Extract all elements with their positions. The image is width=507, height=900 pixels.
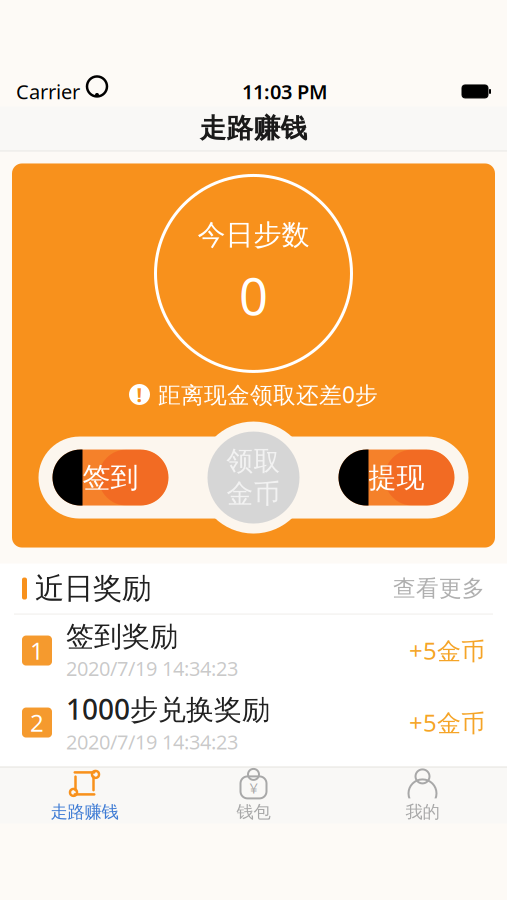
staticText: 领取 xyxy=(226,445,280,478)
staticText: 签到奖励 xyxy=(66,620,178,654)
staticText: 签到 xyxy=(82,460,138,495)
staticText: +5金币 xyxy=(409,635,485,666)
staticText: 2020/7/19 14:34:23 xyxy=(66,728,238,755)
staticText: 11:03 PM xyxy=(242,78,328,105)
button[interactable]: 领取 xyxy=(207,432,299,524)
staticText: 走路赚钱 xyxy=(199,112,307,145)
button[interactable]: ¥ xyxy=(169,768,338,824)
button[interactable]: 我的 xyxy=(338,768,507,824)
button[interactable]: 签到 xyxy=(52,450,168,506)
staticText: 钱包 xyxy=(236,801,270,823)
button[interactable]: 2 xyxy=(0,687,507,759)
button[interactable]: 走路赚钱 xyxy=(0,768,169,824)
staticText: Carrier xyxy=(16,78,80,105)
staticText: 金币 xyxy=(226,478,280,510)
staticText: 今日步数 xyxy=(197,218,309,252)
staticText: 1 xyxy=(30,635,44,666)
staticText: 提现 xyxy=(368,460,424,495)
staticText: 走路赚钱 xyxy=(50,801,118,823)
staticText: 我的 xyxy=(405,801,439,823)
button[interactable]: 查看更多 xyxy=(381,569,485,608)
staticText: ¥ xyxy=(249,778,257,798)
staticText: 距离现金领取还差0步 xyxy=(158,379,378,409)
button[interactable]: 1 xyxy=(0,615,507,687)
staticText: 近日奖励 xyxy=(35,570,151,606)
staticText: 查看更多 xyxy=(393,575,485,602)
staticText: ! xyxy=(136,381,142,408)
staticText: 1000步兑换奖励 xyxy=(66,690,270,727)
staticText: 2020/7/19 14:34:23 xyxy=(66,655,238,682)
staticText: 0 xyxy=(239,262,268,329)
staticText: 2 xyxy=(30,707,44,738)
staticText: +5金币 xyxy=(409,707,485,738)
button[interactable]: 提现 xyxy=(338,450,454,506)
